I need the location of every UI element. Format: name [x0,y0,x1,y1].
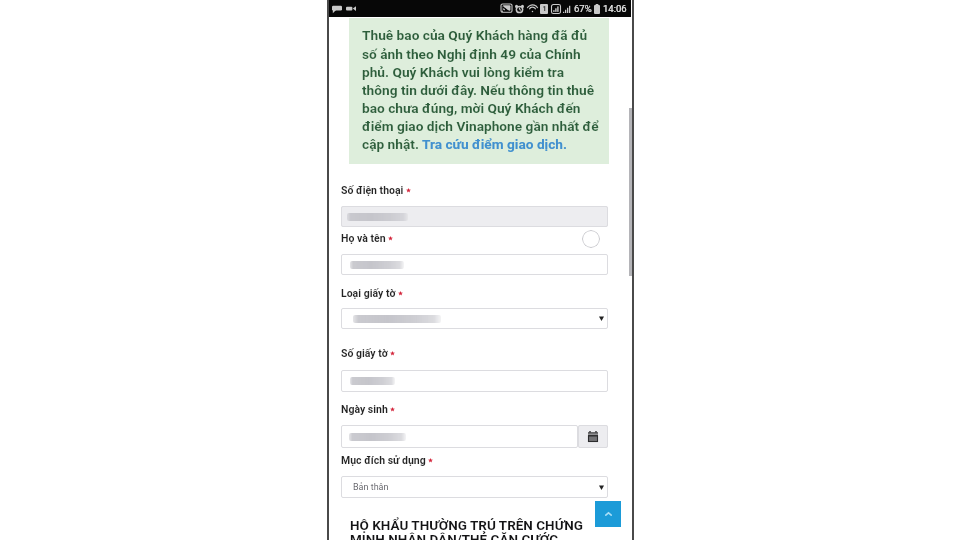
staticText: Loại giấy tờ [341,287,396,299]
button[interactable] [341,206,608,227]
staticText: Bản thân [353,482,389,493]
staticText: Ngày sinh [341,403,388,415]
button[interactable]: Bản thân [341,476,608,498]
staticText: HỘ KHẨU THƯỜNG TRÚ TRÊN CHỨNG MINH NHÂN … [350,517,583,540]
button[interactable]: Scroll to top [595,501,621,527]
staticText: Họ và tên [341,232,386,244]
staticText: Mục đích sử dụng [341,454,426,466]
staticText: 1 [542,5,547,13]
button[interactable] [341,308,608,329]
button[interactable]: Pick date [578,425,608,448]
staticText: Thuê bao của Quý Khách hàng đã đủ số ảnh… [362,27,599,152]
staticText: 14:06 [603,3,627,14]
staticText: 67% [574,3,592,14]
button[interactable] [341,254,608,275]
button[interactable] [341,425,578,448]
button[interactable]: Tra cứu điểm giao dịch [417,136,564,152]
staticText: Số điện thoại [341,184,404,196]
staticText: Số giấy tờ [341,347,388,359]
button[interactable] [341,370,608,392]
